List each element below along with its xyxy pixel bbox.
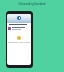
other: Badge: [17, 36, 21, 40]
staticText: Complete your profile: [7, 41, 31, 44]
other: Info: [17, 16, 21, 20]
button[interactable]: [8, 27, 30, 30]
button[interactable]: Onboarding Standard: [0, 2, 64, 6]
